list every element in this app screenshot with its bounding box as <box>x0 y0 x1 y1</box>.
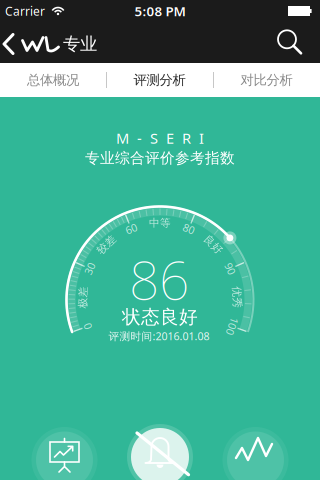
staticText: 80 <box>183 221 195 236</box>
button[interactable]: 总体概况 <box>0 63 106 97</box>
staticText: 评测分析 <box>133 72 185 88</box>
staticText: 较差 <box>95 238 117 251</box>
button[interactable]: Trends <box>220 425 290 480</box>
staticText: 86 <box>129 244 189 314</box>
staticText: 评测时间:2016.01.08 <box>108 329 209 343</box>
staticText: 90 <box>224 262 236 276</box>
staticText: Carrier <box>5 3 45 19</box>
button[interactable]: Back <box>2 33 16 55</box>
button[interactable]: 评测分析 <box>106 63 213 97</box>
staticText: 良好 <box>202 238 224 251</box>
staticText: M - S E R I <box>116 128 204 148</box>
staticText: 0 <box>85 319 91 333</box>
staticText: 中等 <box>149 216 171 229</box>
staticText: 60 <box>125 221 137 236</box>
staticText: 100 <box>223 319 241 333</box>
staticText: 总体概况 <box>27 72 79 88</box>
staticText: 5:08 PM <box>134 2 185 20</box>
staticText: 对比分析 <box>240 72 292 88</box>
button[interactable]: Report <box>29 425 99 480</box>
staticText: 状态良好 <box>122 305 198 328</box>
staticText: 优秀 <box>226 291 248 304</box>
button[interactable]: Search <box>277 29 303 55</box>
staticText: 极差 <box>72 291 94 304</box>
staticText: 专业 <box>63 33 97 55</box>
button[interactable]: 对比分析 <box>213 63 320 97</box>
staticText: 专业综合评价参考指数 <box>85 149 235 167</box>
button[interactable]: Mute notifications <box>125 422 195 480</box>
staticText: 30 <box>84 262 96 276</box>
